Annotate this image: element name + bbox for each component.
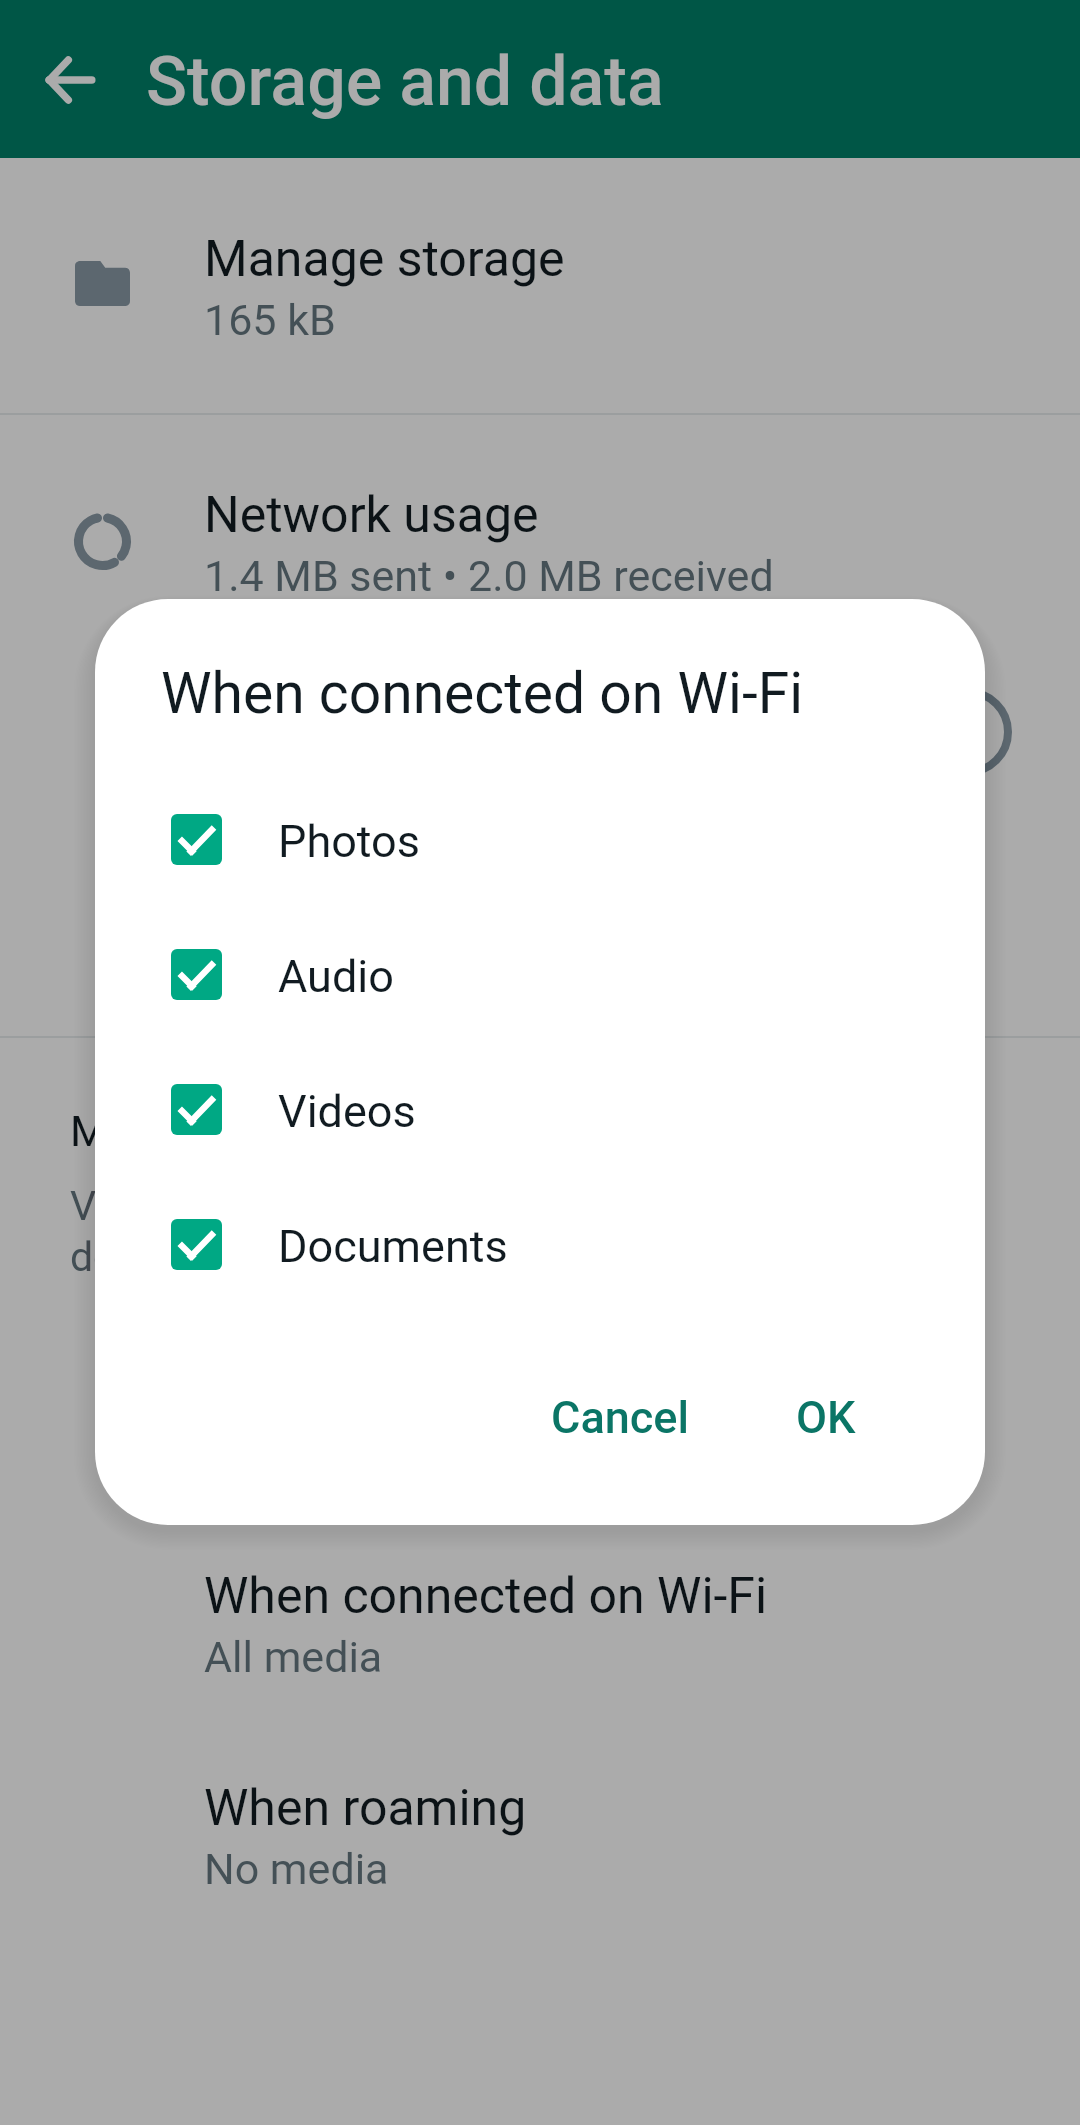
staticText: When connected on Wi-Fi [161, 660, 804, 727]
staticText: When connected on Wi-Fi [204, 1567, 768, 1626]
button[interactable]: Manage storage [0, 158, 1080, 414]
button[interactable]: When roaming [0, 1730, 1080, 1942]
staticText: Network usage [204, 486, 539, 545]
staticText: Photos [278, 815, 421, 868]
staticText: Voice messages are always automatically … [70, 1182, 830, 1281]
staticText: Media auto-download [70, 1106, 484, 1156]
staticText: Cancel [551, 1391, 690, 1444]
button[interactable]: Videos [95, 1042, 985, 1177]
button[interactable]: When connected on Wi-Fi [0, 1518, 1080, 1730]
staticText: Storage and data [146, 42, 664, 122]
staticText: All media [204, 1632, 383, 1682]
staticText: Documents [278, 1220, 508, 1273]
button[interactable]: Audio [95, 907, 985, 1042]
button[interactable]: OK [766, 1357, 886, 1478]
button[interactable]: Back [38, 47, 104, 113]
button[interactable]: Network usage [0, 415, 1080, 671]
staticText: 165 kB [204, 295, 336, 345]
button[interactable]: Photos [95, 772, 985, 907]
staticText: OK [796, 1391, 856, 1444]
button[interactable]: Documents [95, 1177, 985, 1312]
staticText: 1.4 MB sent • 2.0 MB received [204, 551, 774, 601]
staticText: When roaming [204, 1779, 527, 1838]
staticText: Manage storage [204, 230, 565, 289]
staticText: Audio [278, 950, 394, 1003]
staticText: Videos [278, 1085, 416, 1138]
staticText: No media [204, 1844, 389, 1894]
button[interactable] [0, 671, 1080, 1035]
button[interactable]: Cancel [521, 1357, 720, 1478]
